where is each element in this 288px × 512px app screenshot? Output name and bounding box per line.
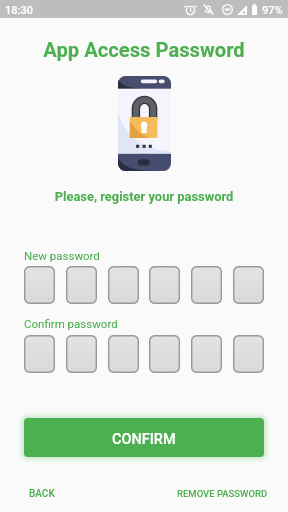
- button[interactable]: [191, 266, 222, 304]
- staticText: REMOVE PASSWORD: [177, 488, 268, 499]
- button[interactable]: [191, 335, 222, 373]
- staticText: New password: [24, 249, 100, 262]
- button[interactable]: [66, 335, 97, 373]
- button[interactable]: BACK: [21, 483, 63, 505]
- button[interactable]: [24, 335, 55, 373]
- button[interactable]: CONFIRM: [24, 418, 264, 457]
- staticText: Confirm password: [24, 317, 118, 330]
- button[interactable]: [24, 266, 55, 304]
- staticText: 97%: [262, 4, 283, 17]
- button[interactable]: [149, 266, 180, 304]
- button[interactable]: [66, 266, 97, 304]
- button[interactable]: [108, 266, 139, 304]
- button[interactable]: [233, 335, 264, 373]
- staticText: BACK: [29, 488, 55, 500]
- button[interactable]: REMOVE PASSWORD: [169, 483, 276, 504]
- staticText: CONFIRM: [112, 431, 176, 448]
- button[interactable]: [108, 335, 139, 373]
- button[interactable]: [233, 266, 264, 304]
- staticText: App Access Password: [0, 38, 288, 62]
- staticText: 18:30: [5, 4, 33, 17]
- staticText: Please, register your password: [0, 189, 288, 204]
- button[interactable]: [149, 335, 180, 373]
